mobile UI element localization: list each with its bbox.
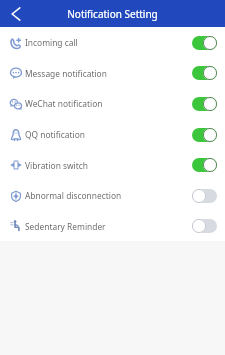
button[interactable]: Incoming call: [0, 27, 225, 58]
button[interactable]: On: [192, 97, 217, 111]
button[interactable]: WeChat notification: [0, 88, 225, 119]
staticText: Vibration switch: [25, 160, 89, 171]
button[interactable]: Back: [0, 0, 32, 27]
button[interactable]: Message notification: [0, 58, 225, 88]
staticText: Message notification: [25, 68, 107, 79]
button[interactable]: Off: [192, 219, 217, 233]
staticText: Sedentary Reminder: [25, 221, 106, 232]
button[interactable]: Sedentary Reminder: [0, 211, 225, 241]
staticText: Abnormal disconnection: [25, 190, 122, 201]
button[interactable]: On: [192, 36, 217, 50]
button[interactable]: On: [192, 128, 217, 142]
button[interactable]: On: [192, 66, 217, 80]
button[interactable]: Vibration switch: [0, 150, 225, 180]
staticText: QQ notification: [25, 129, 85, 140]
staticText: WeChat notification: [25, 98, 103, 109]
staticText: Incoming call: [25, 37, 78, 48]
button[interactable]: QQ notification: [0, 119, 225, 150]
button[interactable]: Abnormal disconnection: [0, 180, 225, 211]
button[interactable]: On: [192, 158, 217, 172]
staticText: Notification Setting: [67, 7, 158, 21]
button[interactable]: Off: [192, 189, 217, 203]
